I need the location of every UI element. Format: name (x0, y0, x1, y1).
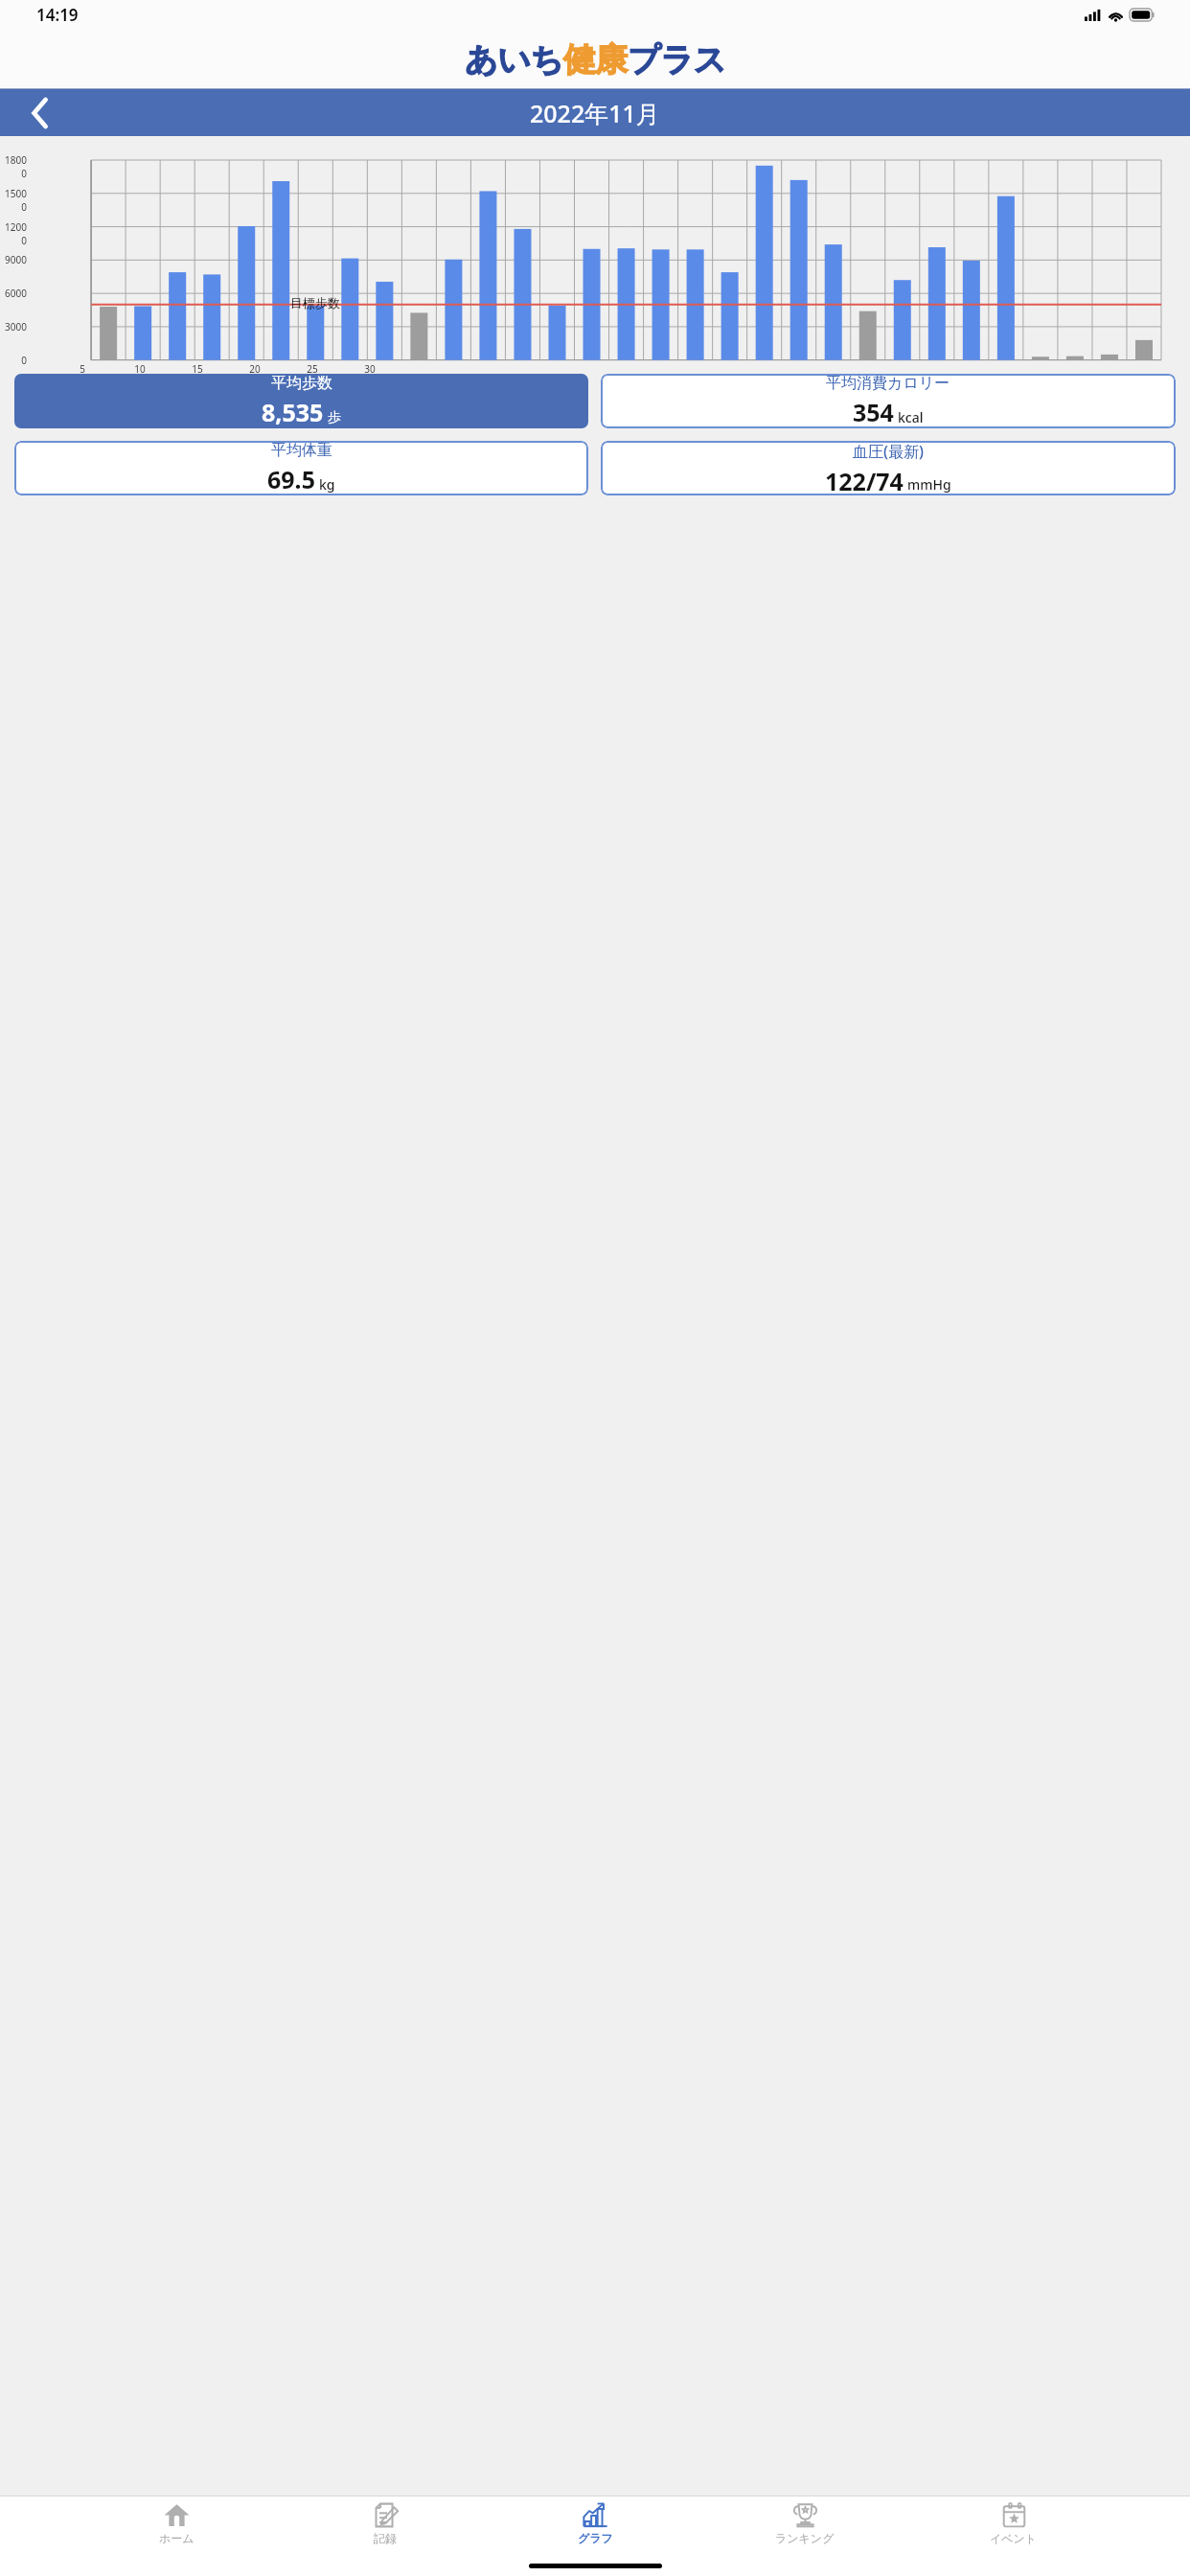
staticText: 6000 (0, 287, 27, 300)
staticText: 14:19 (36, 4, 79, 26)
staticText: 9000 (0, 253, 27, 266)
button[interactable]: 平均消費カロリー (601, 374, 1176, 428)
staticText: ランキング (775, 2531, 835, 2545)
button[interactable]: グラフ (561, 2500, 629, 2547)
button[interactable]: 血圧(最新) (601, 441, 1176, 495)
staticText: 3000 (0, 320, 27, 333)
button[interactable]: ホーム (143, 2500, 210, 2547)
staticText: 平均消費カロリー (826, 374, 950, 393)
staticText: 0 (0, 354, 27, 367)
staticText: kg (319, 475, 335, 494)
staticText: 5 (73, 362, 92, 376)
staticText: ホーム (159, 2531, 195, 2545)
button[interactable]: 記録 (352, 2500, 419, 2547)
staticText: 健康 (563, 39, 628, 80)
staticText: 15000 (0, 187, 27, 214)
button[interactable]: ランキング (771, 2500, 838, 2547)
staticText: 血圧(最新) (853, 441, 924, 462)
staticText: 354 (853, 396, 894, 428)
staticText: 18000 (0, 153, 27, 180)
staticText: あいち (465, 39, 563, 80)
staticText: プラス (628, 39, 726, 80)
staticText: グラフ (578, 2531, 613, 2545)
staticText: 30 (360, 362, 379, 376)
staticText: イベント (990, 2531, 1038, 2545)
staticText: kcal (898, 408, 924, 426)
staticText: 平均体重 (271, 441, 332, 460)
staticText: 2022年11月 (530, 97, 660, 129)
staticText: 12000 (0, 220, 27, 247)
button[interactable]: Previous month (13, 89, 67, 136)
staticText: 25 (303, 362, 322, 376)
staticText: 歩 (328, 409, 341, 426)
staticText: 平均歩数 (271, 374, 332, 393)
staticText: 15 (188, 362, 207, 376)
staticText: 記録 (374, 2531, 397, 2545)
button[interactable]: 平均歩数 (14, 374, 588, 428)
button[interactable]: イベント (980, 2500, 1047, 2547)
staticText: 8,535 (262, 396, 324, 428)
staticText: 20 (245, 362, 264, 376)
staticText: 69.5 (267, 463, 315, 495)
staticText: mmHg (907, 475, 951, 494)
staticText: 目標歩数 (290, 295, 340, 310)
staticText: 122/74 (825, 465, 904, 495)
button[interactable]: 平均体重 (14, 441, 588, 495)
staticText: 10 (130, 362, 149, 376)
